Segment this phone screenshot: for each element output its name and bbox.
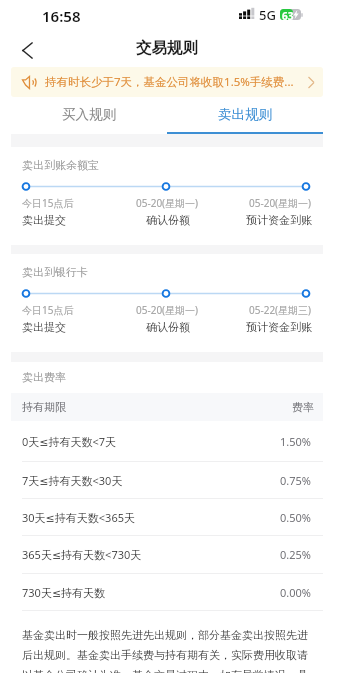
staticText: 05-22(星期三): [249, 303, 312, 317]
staticText: 0.00%: [280, 585, 311, 600]
staticText: 确认份额: [146, 213, 190, 227]
button[interactable]: Back: [15, 38, 39, 62]
staticText: 05-20(星期一): [136, 303, 199, 317]
staticText: 卖出费率: [22, 370, 66, 384]
staticText: 持有时长少于7天，基金公司将收取1.5%手续费...: [45, 74, 304, 90]
button[interactable]: 买入规则: [11, 100, 167, 132]
staticText: 持有期限: [22, 400, 66, 414]
button[interactable]: 持有时长少于7天，基金公司将收取1.5%手续费...: [11, 67, 323, 97]
staticText: 买入规则: [62, 106, 116, 123]
staticText: 卖出提交: [22, 320, 66, 334]
button[interactable]: 卖出规则: [167, 100, 323, 132]
staticText: 确认份额: [146, 320, 190, 334]
staticText: 基金卖出时一般按照先进先出规则，部分基金卖出按照先进后出规则。基金卖出手续费与持…: [22, 628, 311, 673]
staticText: 730天≤持有天数: [22, 585, 106, 600]
staticText: 365天≤持有天数<730天: [22, 547, 142, 562]
staticText: 卖出到账余额宝: [22, 158, 99, 172]
staticText: 0.75%: [280, 473, 311, 488]
staticText: 05-20(星期一): [249, 196, 312, 210]
staticText: 1.50%: [280, 434, 311, 449]
staticText: 卖出到银行卡: [22, 265, 88, 279]
staticText: 预计资金到账: [246, 213, 312, 227]
staticText: 63: [282, 9, 294, 20]
staticText: 今日15点后: [22, 303, 74, 317]
staticText: 5G: [259, 6, 276, 24]
staticText: 16:58: [42, 6, 81, 26]
staticText: 费率: [292, 400, 314, 414]
staticText: 交易规则: [136, 38, 198, 58]
staticText: 今日15点后: [22, 196, 74, 210]
staticText: 7天≤持有天数<30天: [22, 473, 123, 488]
staticText: 卖出提交: [22, 213, 66, 227]
staticText: 0.50%: [280, 510, 311, 525]
staticText: 0.25%: [280, 547, 311, 562]
staticText: 05-20(星期一): [136, 196, 199, 210]
staticText: 30天≤持有天数<365天: [22, 510, 135, 525]
staticText: 预计资金到账: [246, 320, 312, 334]
staticText: 0天≤持有天数<7天: [22, 434, 117, 449]
staticText: 卖出规则: [218, 106, 272, 123]
